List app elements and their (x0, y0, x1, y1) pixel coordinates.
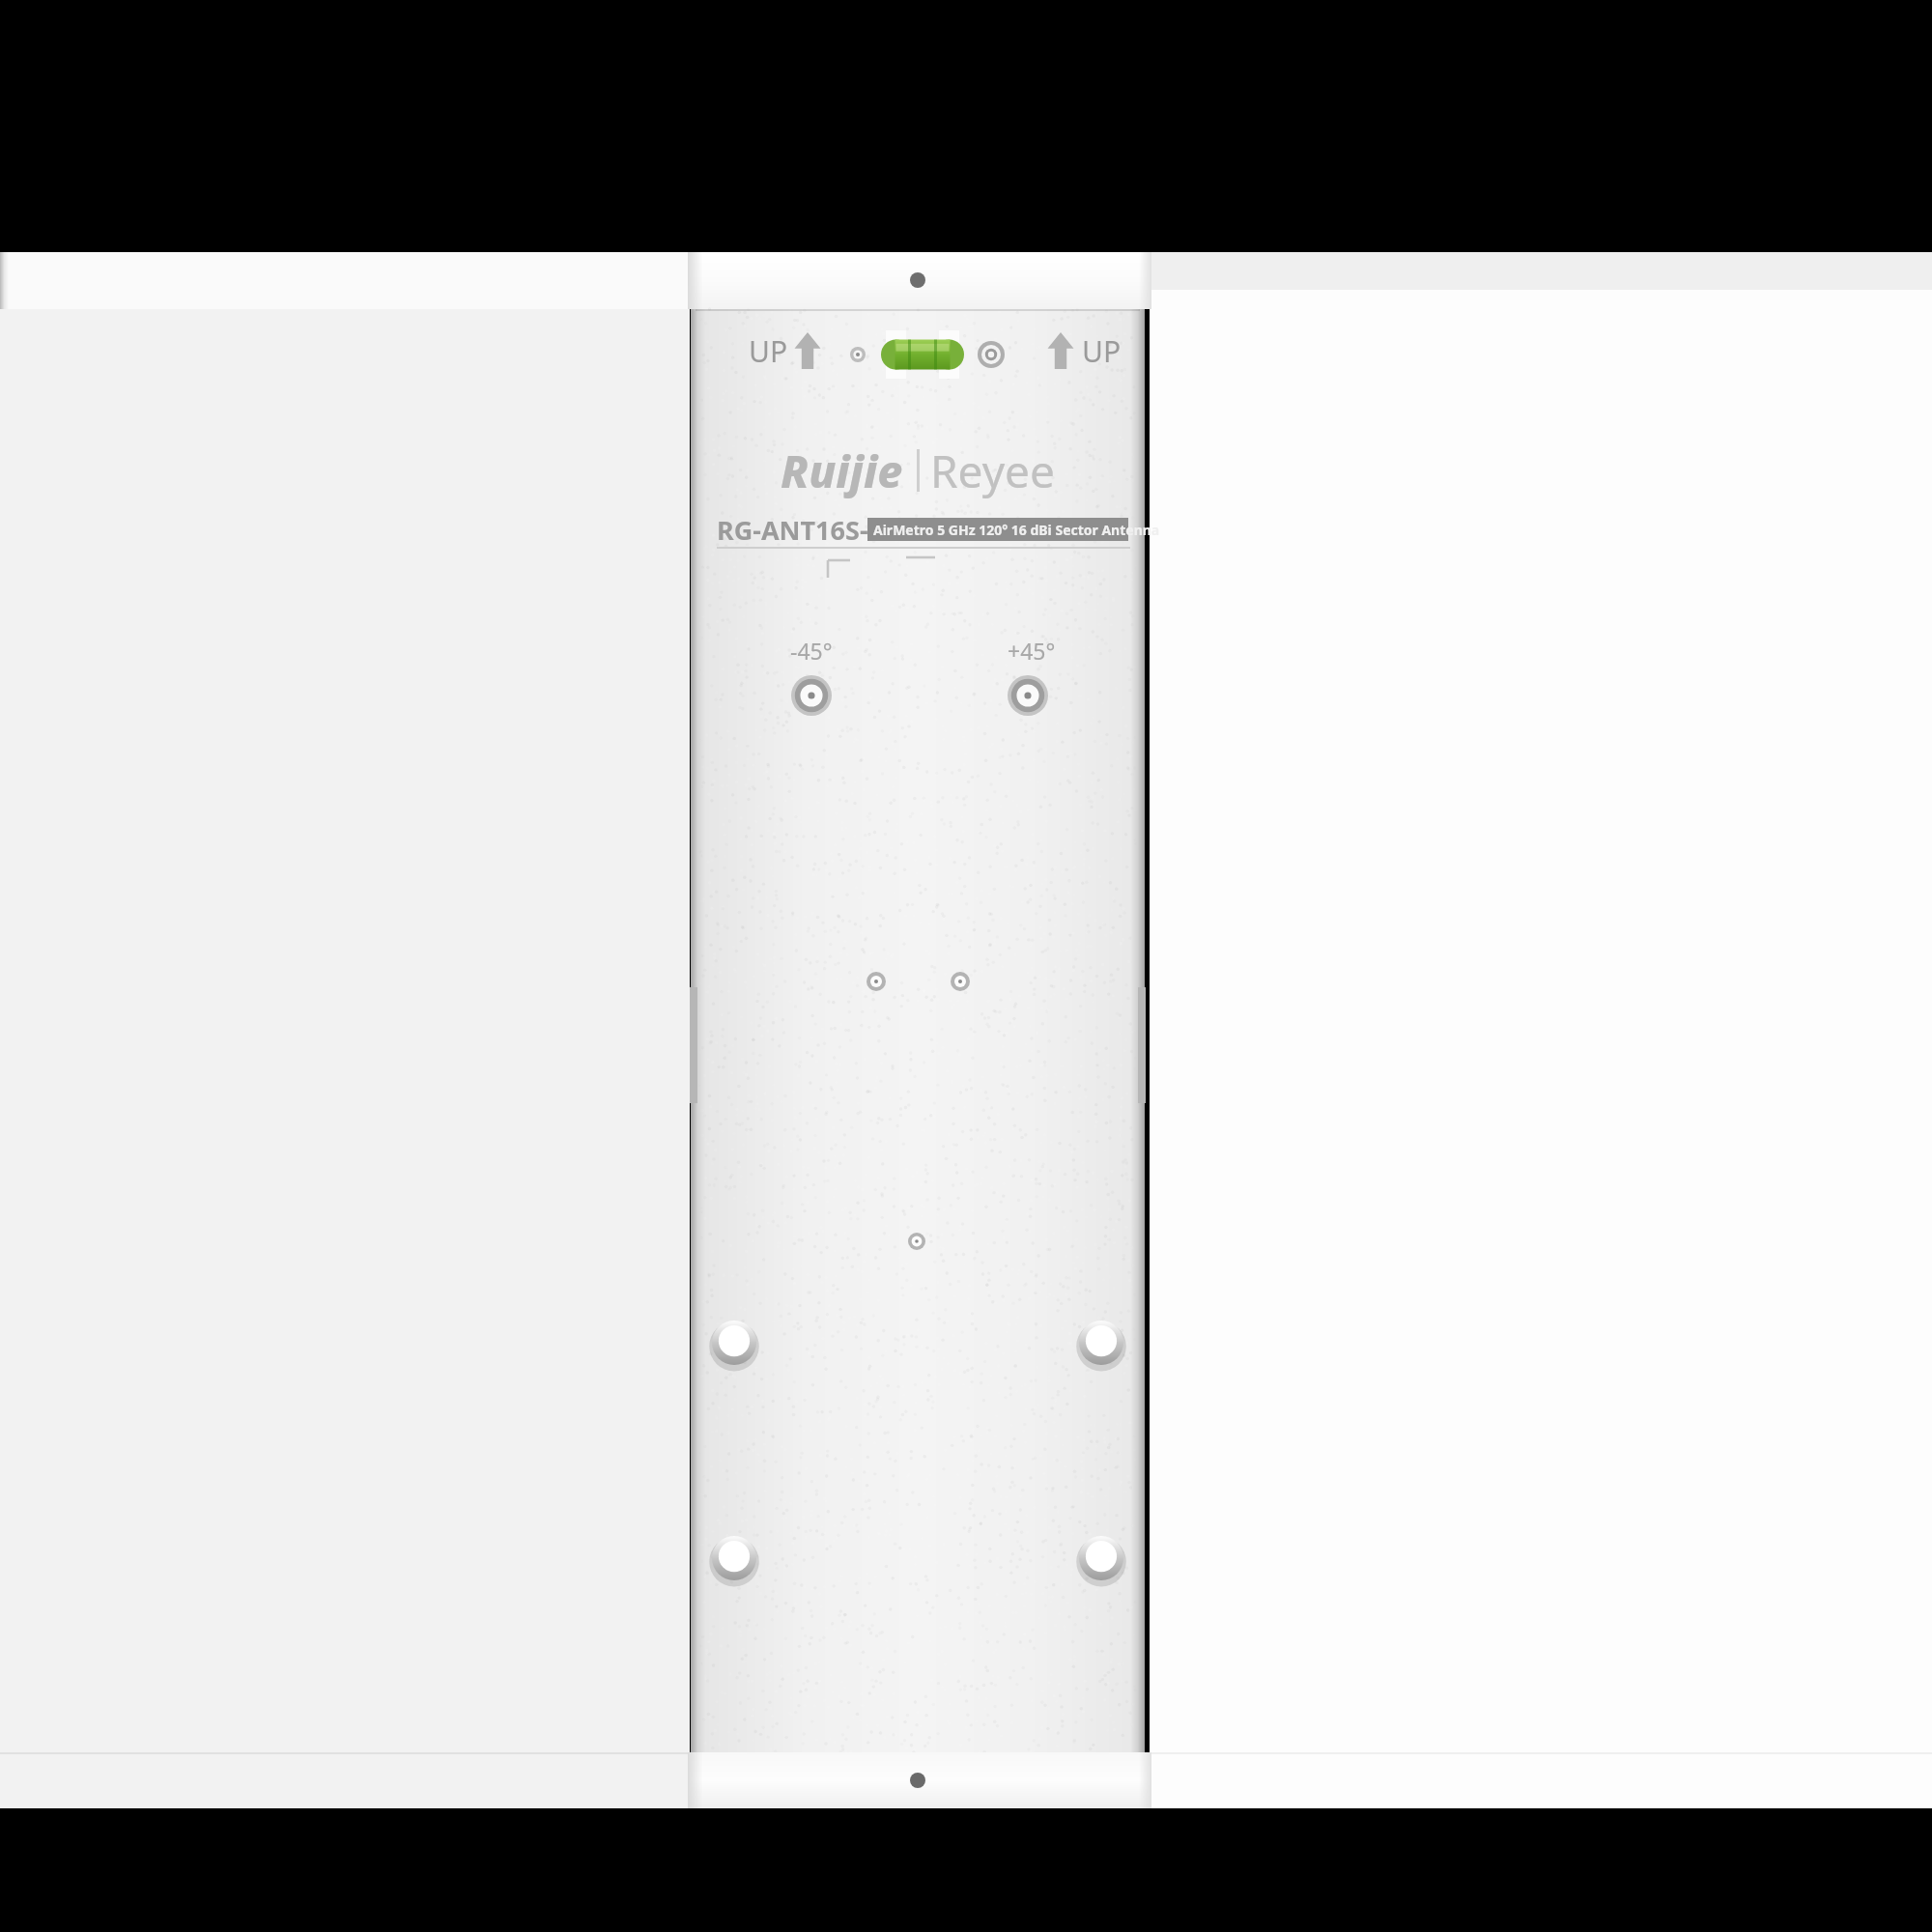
button[interactable]: Ruijie Reyee RG-ANT16S-120 AirMetro 5 GH… (0, 0, 1932, 1932)
